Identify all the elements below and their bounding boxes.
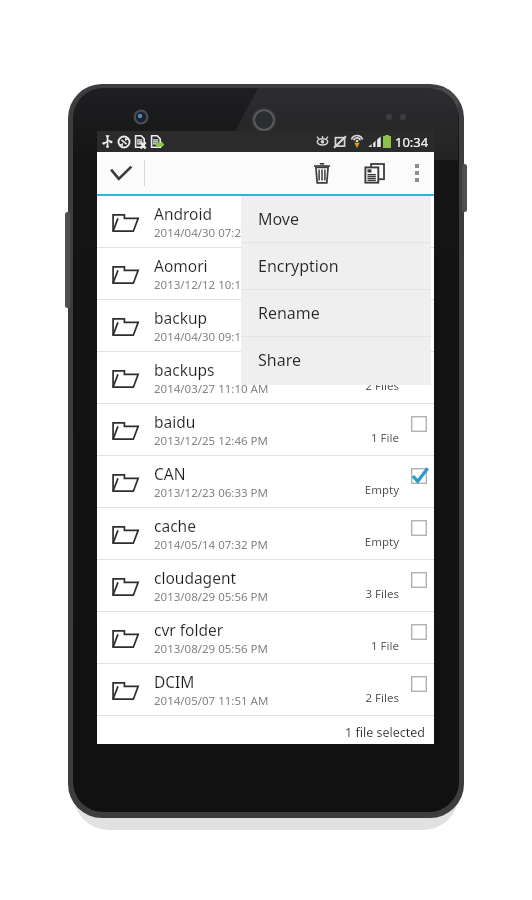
button[interactable]: Share: [241, 337, 431, 383]
button[interactable]: CAN: [97, 456, 434, 507]
staticText: Aomori: [154, 255, 208, 276]
button[interactable]: Delete: [296, 152, 348, 194]
button[interactable]: baidu: [97, 404, 434, 455]
staticText: 10:34: [395, 133, 429, 151]
button[interactable]: Not selected: [403, 196, 434, 247]
button[interactable]: Not selected: [403, 612, 434, 663]
button[interactable]: backups: [97, 352, 434, 403]
staticText: 2013/12/12 10:11 AM: [154, 277, 269, 293]
staticText: cvr folder: [154, 619, 224, 640]
staticText: Empty: [364, 534, 399, 550]
staticText: 2013/08/29 05:56 PM: [154, 589, 268, 605]
button[interactable]: Copy: [348, 152, 400, 194]
staticText: Empty: [364, 482, 399, 498]
staticText: 2014/03/27 11:10 AM: [154, 381, 269, 397]
button[interactable]: cache: [97, 508, 434, 559]
staticText: 1 file selected: [345, 724, 426, 741]
staticText: cache: [154, 515, 196, 536]
button[interactable]: Rename: [241, 290, 431, 336]
staticText: baidu: [154, 411, 196, 432]
button[interactable]: cvr folder: [97, 612, 434, 663]
button[interactable]: Not selected: [403, 352, 434, 403]
staticText: Encryption: [258, 255, 339, 277]
staticText: 1 File: [371, 430, 399, 446]
button[interactable]: Not selected: [403, 508, 434, 559]
button[interactable]: Encryption: [241, 243, 431, 289]
button[interactable]: Not selected: [403, 664, 434, 715]
staticText: 2013/12/25 12:46 PM: [154, 433, 268, 449]
staticText: DCIM: [154, 671, 195, 692]
staticText: backup: [154, 307, 208, 328]
button[interactable]: Selected: [403, 456, 434, 507]
button[interactable]: Android: [97, 196, 434, 247]
staticText: 3 Files: [365, 586, 399, 602]
staticText: 2014/05/07 11:51 AM: [154, 693, 269, 709]
button[interactable]: DCIM: [97, 664, 434, 715]
staticText: 2013/08/29 05:56 PM: [154, 641, 268, 657]
staticText: Android: [154, 203, 213, 224]
staticText: backups: [154, 359, 215, 380]
staticText: 2014/04/30 09:18 AM: [154, 329, 269, 345]
staticText: 2 Files: [365, 690, 399, 706]
button[interactable]: Not selected: [403, 248, 434, 299]
staticText: 2013/12/23 06:33 PM: [154, 485, 268, 501]
staticText: 1 File: [371, 638, 399, 654]
button[interactable]: backup: [97, 300, 434, 351]
button[interactable]: More options: [400, 152, 434, 194]
staticText: cloudagent: [154, 567, 237, 588]
staticText: Move: [258, 208, 300, 230]
button[interactable]: Not selected: [403, 300, 434, 351]
staticText: 2 Files: [365, 378, 399, 394]
staticText: CAN: [154, 463, 186, 484]
staticText: 2014/05/14 07:32 PM: [154, 537, 268, 553]
button[interactable]: Not selected: [403, 560, 434, 611]
button[interactable]: cloudagent: [97, 560, 434, 611]
staticText: 2014/04/30 07:24 PM: [154, 225, 268, 241]
staticText: Share: [258, 349, 301, 371]
button[interactable]: Aomori: [97, 248, 434, 299]
button[interactable]: Move: [241, 196, 431, 242]
staticText: Rename: [258, 302, 320, 324]
button[interactable]: Not selected: [403, 404, 434, 455]
button[interactable]: Done: [97, 152, 144, 194]
